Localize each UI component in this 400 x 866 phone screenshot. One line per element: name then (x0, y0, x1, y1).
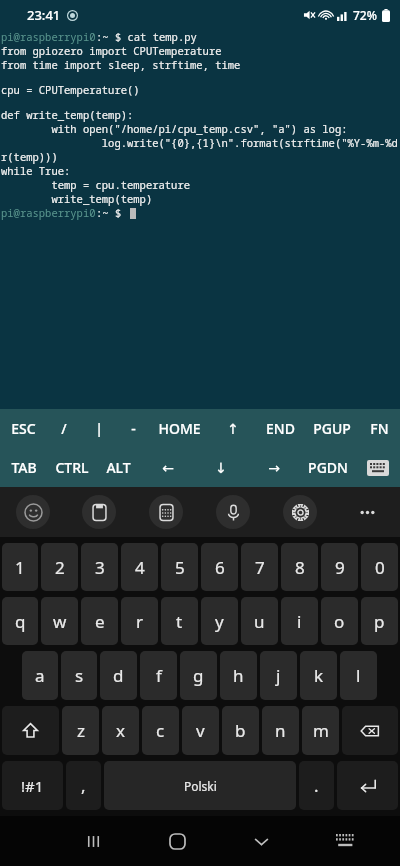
staticText: 7 (255, 556, 265, 579)
staticText: q (15, 610, 26, 633)
staticText: !#1 (21, 776, 44, 796)
staticText: ← (162, 460, 174, 476)
staticText: CTRL (55, 458, 89, 477)
button[interactable]: f (140, 651, 177, 700)
button[interactable]: END (257, 409, 304, 448)
button[interactable]: → (247, 448, 300, 487)
button[interactable]: Recent apps (51, 816, 135, 866)
button[interactable]: HOME (151, 409, 208, 448)
staticText: g (193, 664, 204, 687)
button[interactable]: y (201, 597, 238, 645)
button[interactable]: s (61, 651, 97, 700)
button[interactable]: m (302, 706, 339, 755)
button[interactable]: Keyboard layout (303, 816, 387, 866)
staticText: ALT (106, 458, 131, 477)
staticText: 9 (335, 556, 345, 579)
staticText: while True: (1, 164, 71, 178)
button[interactable]: More options (333, 487, 400, 537)
staticText: t (176, 610, 183, 633)
staticText: i (297, 610, 302, 633)
button[interactable]: b (222, 706, 259, 755)
button[interactable]: Clipboard (66, 487, 132, 537)
staticText: from gpiozero import CPUTemperature (1, 44, 222, 58)
button[interactable]: l (340, 651, 377, 700)
button[interactable]: 7 (241, 543, 278, 591)
button[interactable]: Home (135, 816, 219, 866)
button[interactable]: r (121, 597, 158, 645)
button[interactable]: | (81, 409, 116, 448)
staticText: b (235, 719, 246, 742)
button[interactable]: j (260, 651, 297, 700)
button[interactable]: x (102, 706, 139, 755)
button[interactable]: u (241, 597, 278, 645)
button[interactable]: v (182, 706, 219, 755)
button[interactable]: 3 (81, 543, 118, 591)
button[interactable]: 0 (361, 543, 398, 591)
button[interactable]: c (142, 706, 179, 755)
staticText: , (81, 774, 86, 797)
button[interactable]: h (220, 651, 257, 700)
button[interactable]: k (300, 651, 337, 700)
staticText: ↓ (215, 460, 227, 476)
staticText: log.write("{0},{1}\n".format(strftime("%… (1, 136, 400, 150)
button[interactable]: PGUP (304, 409, 359, 448)
button[interactable]: - (116, 409, 151, 448)
button[interactable]: Text edit (132, 487, 199, 537)
button[interactable]: 9 (321, 543, 358, 591)
button[interactable]: . (299, 761, 334, 810)
staticText: temp = cpu.temperature (1, 178, 190, 192)
button[interactable]: q (2, 597, 38, 645)
staticText: ↑ (227, 421, 239, 437)
button[interactable]: 1 (2, 543, 38, 591)
button[interactable]: ESC (0, 409, 46, 448)
staticText: 6 (215, 556, 225, 579)
button[interactable]: 6 (201, 543, 238, 591)
button[interactable]: Enter (337, 761, 398, 810)
button[interactable]: Hide keyboard (219, 816, 303, 866)
button[interactable]: d (100, 651, 137, 700)
button[interactable]: n (262, 706, 299, 755)
button[interactable]: PGDN (300, 448, 355, 487)
staticText: from time import sleep, strftime, time (1, 58, 241, 72)
button[interactable]: CTRL (47, 448, 96, 487)
button[interactable]: o (321, 597, 358, 645)
button[interactable]: ↓ (194, 448, 247, 487)
button[interactable]: z (62, 706, 99, 755)
button[interactable]: a (22, 651, 58, 700)
button[interactable]: 4 (121, 543, 158, 591)
button[interactable]: !#1 (2, 761, 63, 810)
button[interactable]: Hide keyboard (355, 448, 400, 487)
button[interactable]: Shift (2, 706, 59, 755)
button[interactable]: Backspace (342, 706, 398, 755)
button[interactable]: e (81, 597, 118, 645)
staticText: 72% (353, 7, 377, 23)
button[interactable]: i (281, 597, 318, 645)
button[interactable]: 2 (41, 543, 78, 591)
button[interactable]: TAB (0, 448, 47, 487)
button[interactable]: w (41, 597, 78, 645)
button[interactable]: t (161, 597, 198, 645)
button[interactable]: 5 (161, 543, 198, 591)
staticText: c (156, 719, 165, 742)
button[interactable]: ALT (96, 448, 141, 487)
button[interactable]: Polski (104, 761, 296, 810)
staticText: w (53, 610, 67, 633)
staticText: Polski (184, 778, 217, 794)
button[interactable]: Emoji (0, 487, 66, 537)
staticText: with open("/home/pi/cpu_temp.csv", "a") … (1, 122, 348, 136)
button[interactable]: FN (359, 409, 400, 448)
button[interactable]: ↑ (208, 409, 257, 448)
staticText: x (116, 719, 125, 742)
button[interactable]: Voice input (199, 487, 266, 537)
staticText: 2 (55, 556, 65, 579)
button[interactable]: p (361, 597, 398, 645)
staticText: 1 (15, 556, 25, 579)
button[interactable]: , (66, 761, 101, 810)
button[interactable]: Settings (266, 487, 333, 537)
button[interactable]: 8 (281, 543, 318, 591)
button[interactable]: g (180, 651, 217, 700)
staticText: :~ $ (96, 206, 128, 220)
button[interactable]: ← (141, 448, 194, 487)
button[interactable]: / (46, 409, 81, 448)
staticText: ESC (11, 419, 36, 438)
